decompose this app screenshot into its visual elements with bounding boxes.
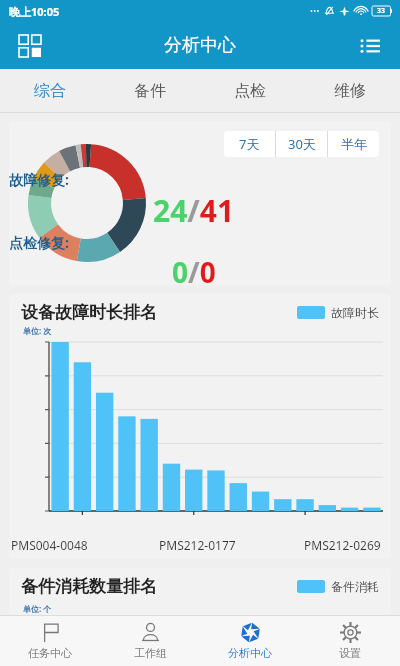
staticText: 维修 [334, 81, 366, 101]
staticText: 设备故障时长排名 [21, 302, 157, 323]
button[interactable]: 综合 [0, 69, 100, 113]
staticText: 分析中心 [164, 34, 236, 57]
staticText: 备件消耗数量排名 [21, 576, 157, 597]
staticText: 故障修复: [9, 170, 69, 189]
staticText: 设置 [339, 646, 361, 660]
staticText: 7天 [239, 135, 260, 153]
staticText: 半年 [341, 136, 367, 152]
staticText: 综合 [34, 81, 66, 101]
button[interactable]: 点检 [200, 69, 300, 113]
button[interactable]: 7天 [224, 131, 275, 157]
button[interactable]: 设置 [300, 615, 400, 666]
staticText: 任务中心 [28, 646, 72, 660]
staticText: 点检修复: [9, 233, 69, 252]
staticText: PMS212-0177 [159, 537, 236, 553]
staticText: 故障时长 [331, 305, 379, 320]
button[interactable]: 半年 [328, 131, 379, 157]
staticText: 晚上10:05 [9, 4, 60, 19]
staticText: 备件 [134, 81, 166, 101]
staticText: PMS212-0269 [304, 537, 381, 553]
button[interactable]: 维修 [300, 69, 400, 113]
staticText: 33 [377, 6, 386, 16]
staticText: 单位: 次 [23, 325, 52, 336]
button[interactable]: 备件 [100, 69, 200, 113]
staticText: 点检 [234, 81, 266, 101]
button[interactable]: 工作组 [100, 615, 200, 666]
staticText: 工作组 [134, 646, 167, 660]
staticText: 单位: 个 [23, 603, 52, 614]
staticText: 分析中心 [228, 646, 272, 660]
button[interactable]: 30天 [276, 131, 327, 157]
staticText: 24/41 [153, 190, 235, 231]
button[interactable]: 任务中心 [0, 615, 100, 666]
staticText: 30天 [288, 135, 316, 153]
staticText: 备件消耗 [331, 579, 379, 594]
staticText: PMS004-0048 [11, 537, 88, 553]
button[interactable]: Grid menu [14, 30, 46, 62]
button[interactable]: Menu [354, 30, 386, 62]
staticText: 0/0 [172, 253, 216, 285]
button[interactable]: 分析中心 [200, 615, 300, 666]
